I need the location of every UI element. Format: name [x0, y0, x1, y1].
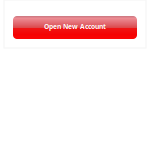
staticText: Open New Account [44, 22, 106, 31]
button[interactable]: Open New Account [13, 16, 137, 39]
